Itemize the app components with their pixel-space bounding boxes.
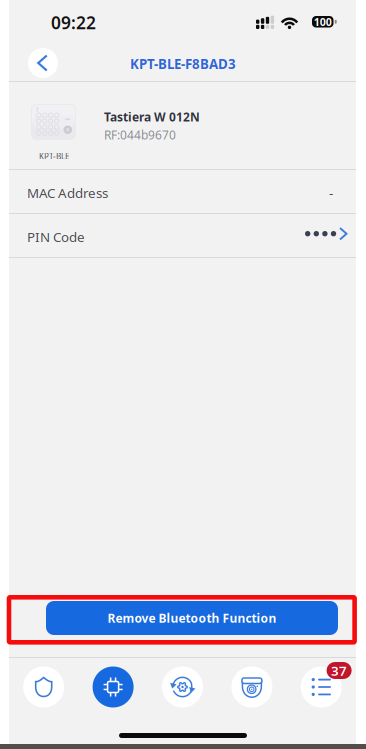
button[interactable]: PIN Code: [9, 214, 356, 257]
staticText: KPT-BLE: [39, 151, 69, 162]
staticText: Tastiera W 012N: [104, 109, 200, 125]
staticText: Remove Bluetooth Function: [107, 610, 276, 626]
staticText: RF:044b9670: [104, 127, 176, 143]
staticText: 100: [314, 15, 332, 29]
staticText: KPT-BLE-F8BAD3: [130, 55, 236, 73]
button[interactable]: MAC Address: [9, 170, 356, 213]
button[interactable]: Back: [26, 46, 60, 80]
button[interactable]: Cameras: [217, 658, 287, 716]
button[interactable]: Remove Bluetooth Function: [46, 601, 338, 635]
button[interactable]: Security: [9, 658, 78, 716]
staticText: 09:22: [51, 11, 96, 34]
staticText: 37: [331, 662, 347, 679]
staticText: PIN Code: [27, 228, 85, 246]
staticText: MAC Address: [27, 184, 108, 202]
button[interactable]: Events: [287, 658, 356, 716]
button[interactable]: Automation: [148, 658, 217, 716]
button[interactable]: Devices: [78, 658, 148, 716]
staticText: -: [329, 184, 333, 202]
